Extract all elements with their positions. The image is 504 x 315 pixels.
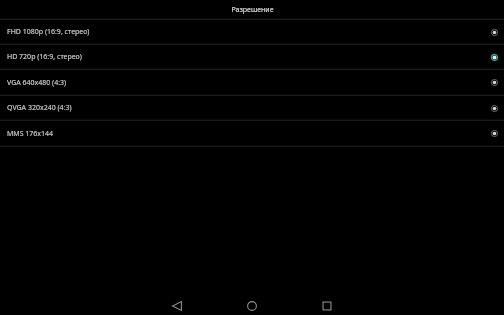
button[interactable]: Recent apps [313, 292, 341, 315]
button[interactable]: MMS 176x144 [0, 121, 504, 146]
staticText: VGA 640x480 (4:3) [7, 78, 484, 88]
button[interactable]: FHD 1080p (16:9, стерео) [0, 20, 504, 44]
button[interactable]: VGA 640x480 (4:3) [0, 70, 504, 95]
button[interactable]: HD 720p (16:9, стерео) [0, 45, 504, 69]
staticText: Разрешение [231, 5, 274, 15]
staticText: QVGA 320x240 (4:3) [7, 103, 484, 113]
staticText: FHD 1080p (16:9, стерео) [7, 27, 484, 37]
staticText: MMS 176x144 [7, 129, 484, 139]
button[interactable]: Back [163, 292, 191, 315]
button[interactable]: QVGA 320x240 (4:3) [0, 96, 504, 120]
staticText: HD 720p (16:9, стерео) [7, 52, 484, 62]
button[interactable]: Home [238, 292, 266, 315]
